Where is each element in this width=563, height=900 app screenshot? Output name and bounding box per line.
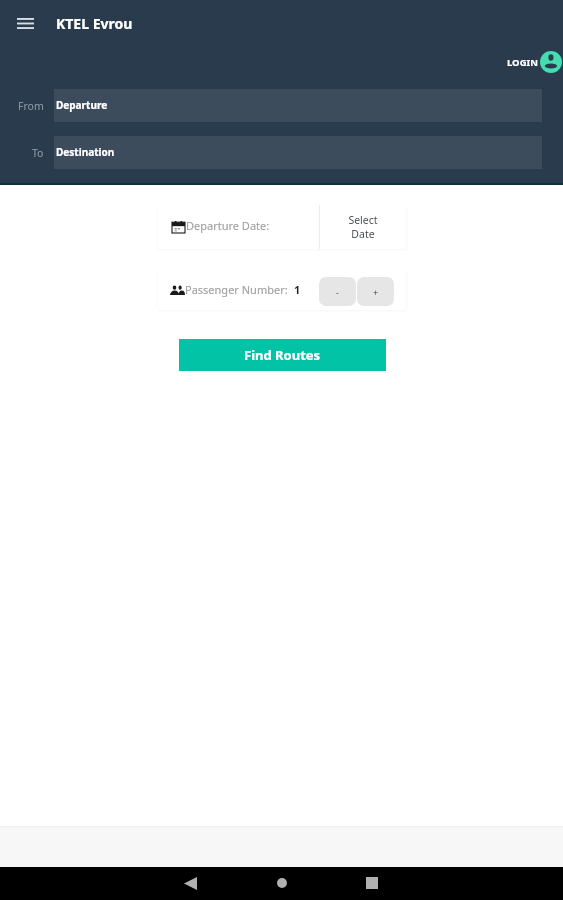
staticText: Destination <box>56 145 115 159</box>
button[interactable]: Back <box>175 867 206 900</box>
button[interactable]: Recents <box>356 866 387 899</box>
staticText: Find Routes <box>244 346 321 364</box>
button[interactable]: Menu <box>9 7 41 39</box>
staticText: Departure Date: <box>186 218 270 233</box>
button[interactable]: Increase passengers <box>357 277 394 306</box>
staticText: + <box>373 286 379 298</box>
button[interactable]: Departure Date: <box>158 205 319 249</box>
staticText: Departure <box>56 98 108 112</box>
staticText: - <box>336 286 339 298</box>
button[interactable]: Departure <box>54 89 542 122</box>
button[interactable]: Destination <box>54 136 542 169</box>
staticText: LOGIN <box>507 56 538 69</box>
staticText: To <box>32 146 44 160</box>
staticText: Select Date <box>348 213 378 241</box>
staticText: 1 <box>294 282 301 297</box>
staticText: Passenger Number: <box>185 282 288 297</box>
staticText: From <box>18 99 44 113</box>
button[interactable]: Select Date <box>320 205 406 249</box>
staticText: KTEL Evrou <box>56 14 133 33</box>
button[interactable]: Decrease passengers <box>319 277 356 306</box>
button[interactable]: Login <box>507 51 563 73</box>
button[interactable]: Home <box>266 866 297 899</box>
button[interactable]: Find Routes <box>179 339 386 371</box>
